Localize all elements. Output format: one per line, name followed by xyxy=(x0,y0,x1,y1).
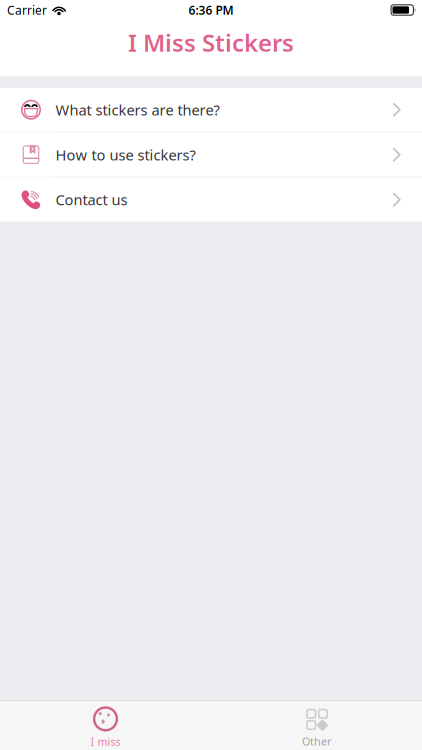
staticText: 6:36 PM xyxy=(188,2,233,18)
button[interactable]: I miss xyxy=(0,701,211,750)
staticText: What stickers are there? xyxy=(55,100,219,119)
staticText: How to use stickers? xyxy=(55,145,195,164)
staticText: Carrier xyxy=(7,2,47,18)
button[interactable]: Contact us xyxy=(0,178,422,222)
staticText: Other xyxy=(302,734,331,748)
staticText: I miss xyxy=(90,734,120,749)
button[interactable]: How to use stickers? xyxy=(0,133,422,177)
staticText: Contact us xyxy=(55,190,127,209)
button[interactable]: What stickers are there? xyxy=(0,88,422,132)
staticText: I Miss Stickers xyxy=(128,27,294,58)
button[interactable]: Other xyxy=(211,701,422,750)
